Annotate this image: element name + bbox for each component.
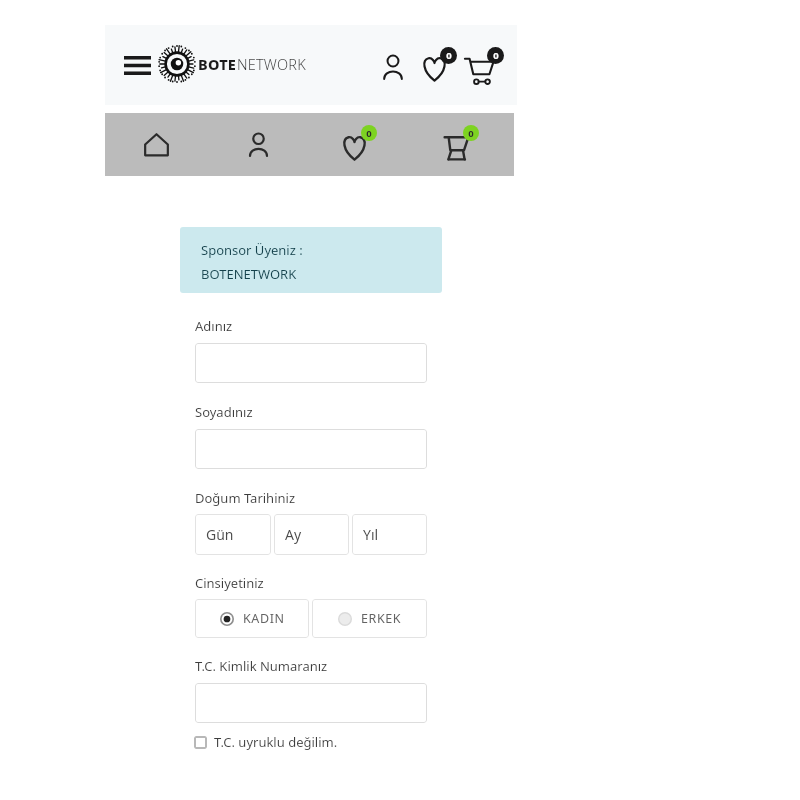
staticText: Soyadınız [195,403,253,421]
staticText: T.C. Kimlik Numaranız [195,657,328,675]
staticText: 0 [446,49,452,62]
button[interactable]: Cart, 0 items [412,113,514,176]
staticText: Adınız [195,317,233,335]
staticText: T.C. uyruklu değilim. [214,733,338,751]
staticText: 0 [468,127,474,140]
button[interactable]: BOTE [158,45,306,83]
button[interactable] [195,683,427,723]
button[interactable]: Gün [195,514,271,555]
staticText: 0 [493,49,499,62]
staticText: Sponsor Üyeniz : [201,241,303,259]
button[interactable] [195,429,427,469]
button[interactable]: Yıl [352,514,427,555]
button[interactable]: Favorites, 0 items [310,113,412,176]
button[interactable]: Cart, 0 items [464,46,510,92]
button[interactable]: Profile [207,113,309,176]
staticText: Cinsiyetiniz [195,574,264,592]
staticText: BOTENETWORK [201,265,297,283]
staticText: BOTE [198,54,237,74]
button[interactable]: Account [373,47,413,87]
staticText: Doğum Tarihiniz [195,489,296,507]
staticText: KADIN [243,610,285,627]
button[interactable]: Ay [274,514,349,555]
staticText: Gün [206,525,234,544]
button[interactable] [195,343,427,383]
button[interactable]: Menu [118,46,156,84]
button[interactable]: Home [105,113,207,176]
button[interactable]: ERKEK [312,599,427,638]
staticText: 0 [366,127,372,140]
button[interactable]: KADIN [195,599,309,638]
staticText: Ay [285,525,302,544]
button[interactable]: Sponsor Üyeniz : [180,227,442,293]
staticText: ERKEK [361,610,402,627]
button[interactable]: T.C. uyruklu değilim. [194,733,338,751]
button[interactable]: Favorites, 0 items [419,46,463,90]
staticText: Yıl [363,525,379,544]
staticText: NETWORK [237,54,306,74]
